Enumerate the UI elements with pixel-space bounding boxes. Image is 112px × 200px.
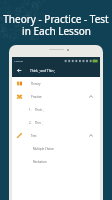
staticText: Recitation bbox=[33, 160, 47, 164]
button[interactable]: Multiple Choice bbox=[12, 142, 100, 155]
staticText: 1. bbox=[29, 108, 32, 112]
staticText: in Each Lesson bbox=[22, 24, 91, 38]
button[interactable]: Back bbox=[14, 65, 23, 76]
staticText: Test bbox=[31, 134, 37, 138]
staticText: Practice bbox=[31, 95, 42, 99]
staticText: Thick ; and Thin ; bbox=[30, 69, 56, 73]
staticText: 2. bbox=[29, 121, 32, 125]
button[interactable]: Theory bbox=[12, 77, 100, 90]
button[interactable]: 1. bbox=[12, 103, 100, 116]
staticText: Thin ; bbox=[35, 121, 43, 125]
staticText: 1:02 PM bbox=[14, 59, 23, 62]
staticText: Multiple Choice bbox=[33, 147, 54, 151]
staticText: Thick ; bbox=[35, 108, 44, 112]
button[interactable]: Test bbox=[12, 129, 100, 142]
button[interactable]: 2. bbox=[12, 116, 100, 129]
button[interactable]: Practice bbox=[12, 90, 100, 103]
staticText: Theory bbox=[31, 82, 41, 86]
button[interactable]: Recitation bbox=[12, 155, 100, 168]
staticText: Theory - Practice - Test bbox=[3, 12, 109, 26]
